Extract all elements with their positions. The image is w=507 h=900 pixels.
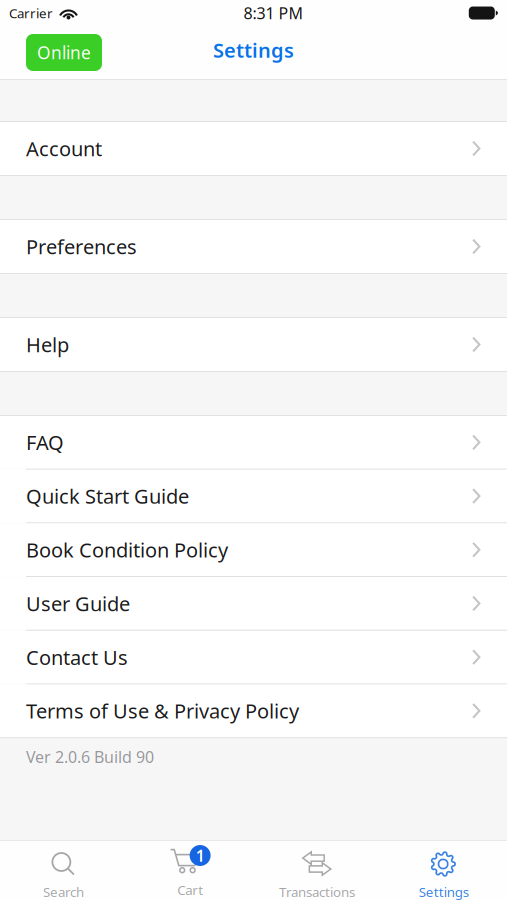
button[interactable]: User Guide	[0, 577, 507, 630]
button[interactable]: Transactions	[253, 841, 380, 900]
staticText: 1	[196, 845, 205, 866]
button[interactable]: FAQ	[0, 416, 507, 469]
staticText: Settings	[213, 37, 294, 63]
button[interactable]: Help	[0, 318, 507, 371]
staticText: Settings	[419, 883, 469, 900]
staticText: Help	[26, 331, 69, 358]
staticText: Cart	[177, 881, 203, 899]
button[interactable]: Contact Us	[0, 631, 507, 683]
staticText: Book Condition Policy	[26, 536, 228, 563]
staticText: Preferences	[26, 233, 137, 260]
button[interactable]: Search	[0, 841, 127, 900]
button[interactable]: Terms of Use & Privacy Policy	[0, 684, 507, 737]
button[interactable]: 1	[127, 841, 254, 900]
staticText: 8:31 PM	[243, 2, 303, 24]
staticText: Contact Us	[26, 644, 128, 670]
staticText: Ver 2.0.6 Build 90	[26, 746, 154, 767]
staticText: Carrier	[9, 4, 53, 22]
staticText: User Guide	[26, 590, 130, 617]
button[interactable]: Preferences	[0, 220, 507, 273]
staticText: Quick Start Guide	[26, 483, 189, 509]
staticText: Terms of Use & Privacy Policy	[26, 698, 299, 724]
button[interactable]: Book Condition Policy	[0, 523, 507, 576]
button[interactable]: Online	[26, 34, 102, 71]
staticText: FAQ	[26, 429, 64, 456]
staticText: Account	[26, 135, 102, 162]
button[interactable]: Account	[0, 122, 507, 175]
staticText: Search	[43, 883, 84, 900]
staticText: Transactions	[279, 883, 355, 900]
button[interactable]: Quick Start Guide	[0, 470, 507, 522]
button[interactable]: Settings	[380, 841, 507, 900]
staticText: Online	[37, 41, 91, 64]
